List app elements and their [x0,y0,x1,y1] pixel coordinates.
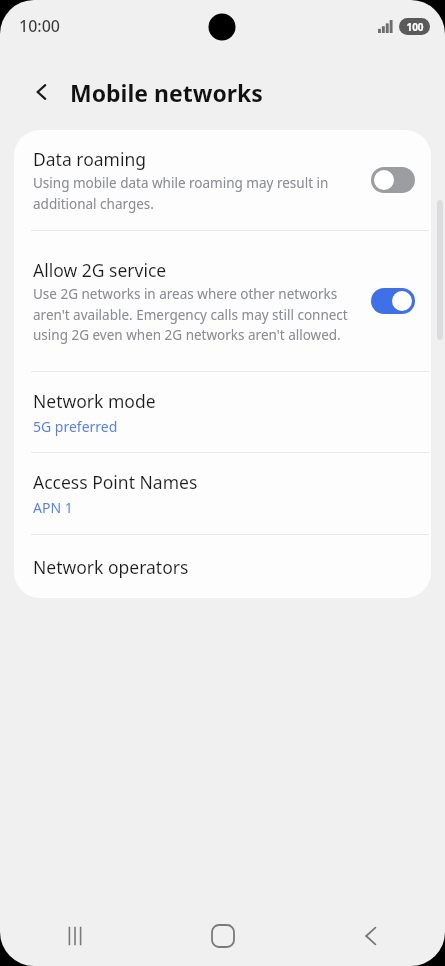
button[interactable]: On [371,288,415,314]
button[interactable]: Network mode [14,372,431,452]
button[interactable]: Network operators [14,535,431,598]
staticText: Using mobile data while roaming may resu… [33,174,359,213]
button[interactable]: Access Point Names [14,453,431,534]
button[interactable]: Off [371,167,415,193]
staticText: Mobile networks [70,77,263,108]
staticText: Access Point Names [33,470,198,494]
staticText: Network operators [33,555,189,579]
staticText: Allow 2G service [33,258,167,282]
button[interactable]: Allow 2G service [14,231,431,371]
staticText: 5G preferred [33,417,118,436]
button[interactable]: Back [22,72,62,112]
staticText: 10:00 [19,15,60,37]
button[interactable]: Data roaming [14,130,431,230]
staticText: 100 [406,20,424,34]
staticText: Use 2G networks in areas where other net… [33,285,359,344]
staticText: Data roaming [33,147,147,171]
button[interactable]: Recents [0,908,149,964]
button[interactable]: Home [149,908,297,964]
staticText: Network mode [33,389,156,413]
button[interactable]: Back [297,908,445,964]
staticText: APN 1 [33,498,73,517]
